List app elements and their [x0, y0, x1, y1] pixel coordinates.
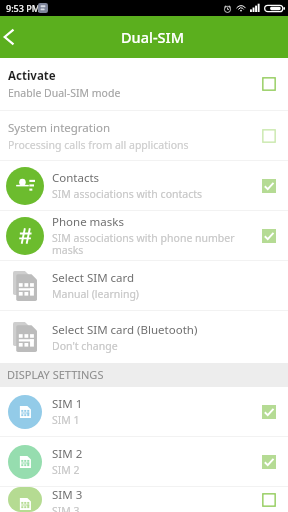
- staticText: SIM associations with phone number masks: [52, 231, 235, 257]
- staticText: Don't change: [52, 339, 118, 353]
- button[interactable]: Toggle: [262, 179, 276, 193]
- button[interactable]: Back: [0, 16, 34, 58]
- button[interactable]: Toggle: [262, 77, 276, 91]
- staticText: SIM associations with contacts: [52, 187, 203, 201]
- button[interactable]: Toggle: [262, 129, 276, 143]
- button[interactable]: SIM 1: [0, 387, 288, 436]
- staticText: Activate: [8, 68, 56, 84]
- staticText: Dual-SIM: [121, 27, 184, 47]
- staticText: System integration: [8, 120, 111, 136]
- button[interactable]: System integration: [0, 111, 288, 160]
- button[interactable]: Contacts: [0, 161, 288, 210]
- button[interactable]: Select SIM card (Bluetooth): [0, 311, 288, 363]
- staticText: Enable Dual-SIM mode: [8, 86, 121, 100]
- button[interactable]: Select SIM card: [0, 261, 288, 310]
- button[interactable]: Toggle: [262, 229, 276, 243]
- staticText: Processing calls from all applications: [8, 138, 189, 152]
- staticText: SIM 3: [52, 487, 83, 503]
- staticText: 9:53 PM: [6, 2, 40, 14]
- staticText: SIM 1: [52, 396, 83, 412]
- button[interactable]: Phone masks: [0, 211, 288, 260]
- button[interactable]: Toggle: [262, 405, 276, 419]
- button[interactable]: Activate: [0, 58, 288, 110]
- staticText: SIM 3: [52, 504, 80, 512]
- staticText: DISPLAY SETTINGS: [7, 367, 104, 382]
- staticText: Select SIM card (Bluetooth): [52, 322, 198, 338]
- button[interactable]: Toggle: [262, 455, 276, 469]
- button[interactable]: SIM 2: [0, 437, 288, 486]
- button[interactable]: Toggle: [262, 493, 276, 507]
- staticText: Contacts: [52, 170, 100, 186]
- staticText: SIM 2: [52, 463, 80, 477]
- staticText: Select SIM card: [52, 270, 135, 286]
- staticText: Phone masks: [52, 214, 124, 230]
- staticText: Manual (learning): [52, 287, 140, 301]
- staticText: SIM 2: [52, 446, 83, 462]
- staticText: SIM 1: [52, 413, 80, 427]
- button[interactable]: SIM 3: [0, 487, 288, 512]
